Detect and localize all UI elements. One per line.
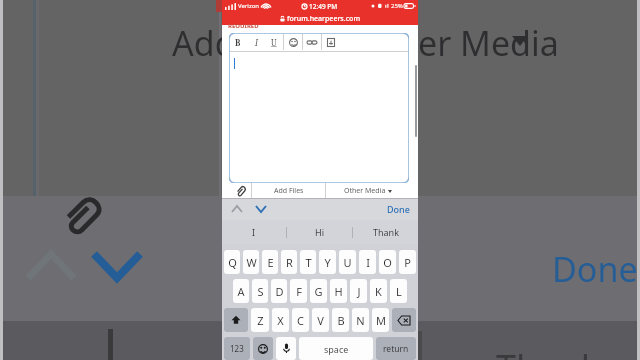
button[interactable]: return bbox=[376, 337, 416, 360]
button[interactable]: I bbox=[222, 220, 286, 244]
button[interactable]: Shift bbox=[224, 308, 248, 332]
staticText: A bbox=[237, 284, 245, 299]
button[interactable]: Other Media bbox=[326, 183, 409, 198]
button[interactable]: Insert image bbox=[322, 33, 340, 51]
button[interactable]: 123 bbox=[224, 337, 250, 360]
button[interactable]: K bbox=[370, 279, 387, 303]
staticText: U bbox=[271, 37, 277, 48]
button[interactable]: N bbox=[352, 308, 369, 332]
button[interactable]: G bbox=[310, 279, 327, 303]
button[interactable]: J bbox=[350, 279, 367, 303]
staticText: I bbox=[255, 37, 258, 48]
button[interactable]: Backspace bbox=[392, 308, 416, 332]
button[interactable]: Q bbox=[224, 250, 240, 274]
button[interactable]: U bbox=[339, 250, 356, 274]
staticText: forum.hearpeers.com bbox=[287, 14, 361, 24]
button[interactable]: Hi bbox=[287, 220, 352, 244]
staticText: Verizon bbox=[238, 2, 260, 10]
button[interactable]: Z bbox=[251, 308, 269, 332]
button[interactable]: C bbox=[292, 308, 309, 332]
staticText: S bbox=[257, 284, 264, 299]
button[interactable]: H bbox=[330, 279, 347, 303]
staticText: L bbox=[396, 284, 402, 299]
staticText: Thank bbox=[496, 343, 600, 360]
button[interactable]: Done bbox=[387, 203, 410, 215]
button[interactable]: V bbox=[312, 308, 329, 332]
button[interactable]: Previous field bbox=[228, 200, 246, 218]
button[interactable]: O bbox=[379, 250, 396, 274]
staticText: W bbox=[246, 255, 257, 270]
button[interactable]: A bbox=[233, 279, 249, 303]
staticText: B bbox=[337, 313, 345, 328]
button[interactable]: Thank bbox=[353, 220, 418, 244]
button[interactable]: Underline bbox=[265, 33, 283, 51]
staticText: REQUIRED bbox=[228, 22, 259, 28]
button[interactable]: I bbox=[359, 250, 376, 274]
button[interactable]: S bbox=[252, 279, 268, 303]
staticText: I bbox=[252, 226, 256, 238]
staticText: B bbox=[235, 37, 241, 48]
button[interactable]: Next field bbox=[252, 200, 270, 218]
button[interactable]: Insert emoji bbox=[284, 33, 302, 51]
staticText: Done bbox=[552, 246, 638, 292]
button[interactable]: Italic bbox=[247, 33, 265, 51]
staticText: Other Media bbox=[344, 186, 386, 196]
button[interactable]: B bbox=[332, 308, 349, 332]
button[interactable]: Insert link bbox=[303, 33, 321, 51]
staticText: F bbox=[296, 284, 302, 299]
staticText: E bbox=[267, 255, 274, 270]
staticText: C bbox=[297, 313, 304, 328]
button[interactable]: Emoji keyboard bbox=[253, 337, 273, 360]
button[interactable]: W bbox=[243, 250, 259, 274]
staticText: V bbox=[317, 313, 324, 328]
button[interactable]: Dictation bbox=[276, 337, 296, 360]
staticText: Z bbox=[257, 313, 264, 328]
button[interactable]: T bbox=[300, 250, 316, 274]
button[interactable]: Y bbox=[319, 250, 336, 274]
staticText: Hi bbox=[315, 226, 324, 238]
staticText: X bbox=[277, 313, 284, 328]
button[interactable]: Attach file bbox=[229, 183, 251, 198]
staticText: M bbox=[376, 313, 386, 328]
staticText: return bbox=[383, 343, 409, 355]
staticText: Y bbox=[324, 255, 331, 270]
staticText: space bbox=[324, 343, 349, 355]
staticText: T bbox=[305, 255, 312, 270]
staticText: J bbox=[357, 284, 361, 299]
staticText: Q bbox=[228, 255, 237, 270]
button[interactable]: F bbox=[290, 279, 307, 303]
button[interactable]: M bbox=[372, 308, 389, 332]
staticText: K bbox=[375, 284, 382, 299]
staticText: G bbox=[314, 284, 323, 299]
staticText: U bbox=[343, 255, 352, 270]
button[interactable]: X bbox=[272, 308, 289, 332]
staticText: O bbox=[383, 255, 392, 270]
staticText: 25% bbox=[391, 2, 403, 10]
staticText: Done bbox=[387, 203, 410, 215]
staticText: er Media bbox=[418, 20, 559, 66]
button[interactable]: space bbox=[299, 337, 373, 360]
button[interactable]: L bbox=[390, 279, 407, 303]
button[interactable]: E bbox=[262, 250, 278, 274]
button[interactable]: P bbox=[399, 250, 416, 274]
staticText: Add Files bbox=[274, 186, 304, 196]
staticText: 12:49 PM bbox=[309, 2, 338, 11]
staticText: P bbox=[404, 255, 411, 270]
button[interactable]: Bold bbox=[229, 33, 247, 51]
staticText: Thank bbox=[373, 226, 399, 238]
staticText: Add bbox=[172, 20, 236, 66]
staticText: N bbox=[356, 313, 365, 328]
staticText: R bbox=[286, 255, 293, 270]
button[interactable]: D bbox=[271, 279, 287, 303]
staticText: D bbox=[275, 284, 284, 299]
staticText: I bbox=[366, 255, 370, 270]
staticText: 123 bbox=[230, 343, 244, 354]
button[interactable]: R bbox=[281, 250, 297, 274]
button[interactable]: Add Files bbox=[252, 183, 325, 198]
staticText: H bbox=[334, 284, 343, 299]
